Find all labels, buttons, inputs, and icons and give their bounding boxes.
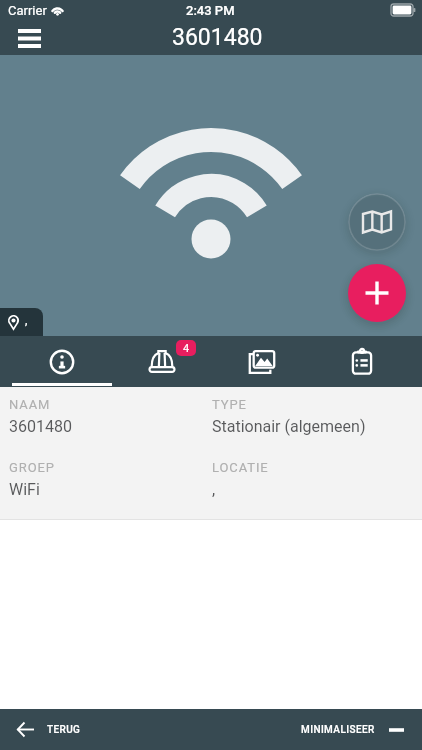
staticText: Carrier bbox=[8, 3, 47, 18]
staticText: GROEP bbox=[9, 460, 55, 475]
button[interactable]: Photos bbox=[212, 336, 312, 387]
staticText: 3601480 bbox=[9, 417, 72, 436]
staticText: 4 bbox=[183, 342, 190, 355]
button[interactable]: Info bbox=[12, 336, 112, 387]
button[interactable]: MINIMALISEER bbox=[287, 714, 422, 746]
staticText: LOCATIE bbox=[212, 460, 269, 475]
staticText: Stationair (algemeen) bbox=[212, 417, 366, 436]
staticText: TYPE bbox=[212, 397, 247, 412]
button[interactable]: TERUG bbox=[0, 714, 95, 745]
button[interactable]: Map bbox=[348, 193, 406, 251]
button[interactable]: Tasks bbox=[112, 336, 212, 387]
button[interactable]: Menu bbox=[9, 22, 49, 55]
staticText: 2:43 PM bbox=[186, 3, 235, 18]
button[interactable]: Forms bbox=[312, 336, 412, 387]
staticText: , bbox=[25, 313, 28, 327]
button[interactable]: Add bbox=[348, 264, 406, 322]
staticText: TERUG bbox=[47, 724, 81, 736]
staticText: WiFi bbox=[9, 480, 40, 499]
staticText: NAAM bbox=[9, 397, 51, 412]
button[interactable]: Location bbox=[0, 308, 43, 336]
staticText: MINIMALISEER bbox=[301, 724, 375, 736]
staticText: 3601480 bbox=[172, 24, 263, 51]
staticText: , bbox=[212, 480, 216, 499]
